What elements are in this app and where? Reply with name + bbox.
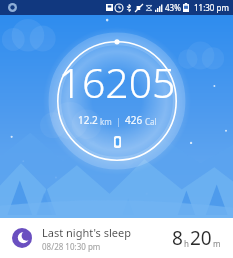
staticText: 8 <box>172 225 183 251</box>
staticText: km <box>100 116 112 127</box>
staticText: 11:30 pm <box>194 2 229 13</box>
staticText: 08/28 10:30 pm <box>42 241 101 252</box>
staticText: h <box>184 238 189 249</box>
staticText: 426 <box>125 113 143 127</box>
staticText: 43% <box>165 2 181 13</box>
staticText: 16205 <box>58 54 176 110</box>
staticText: | <box>116 115 121 127</box>
staticText: 20 <box>190 225 212 251</box>
button[interactable]: Step count 16205 <box>43 27 191 175</box>
staticText: Last night's sleep <box>42 225 131 240</box>
staticText: Cal <box>145 116 157 127</box>
staticText: m <box>213 238 221 249</box>
button[interactable]: Last night's sleep <box>0 218 233 258</box>
staticText: 12.2 <box>78 113 98 127</box>
